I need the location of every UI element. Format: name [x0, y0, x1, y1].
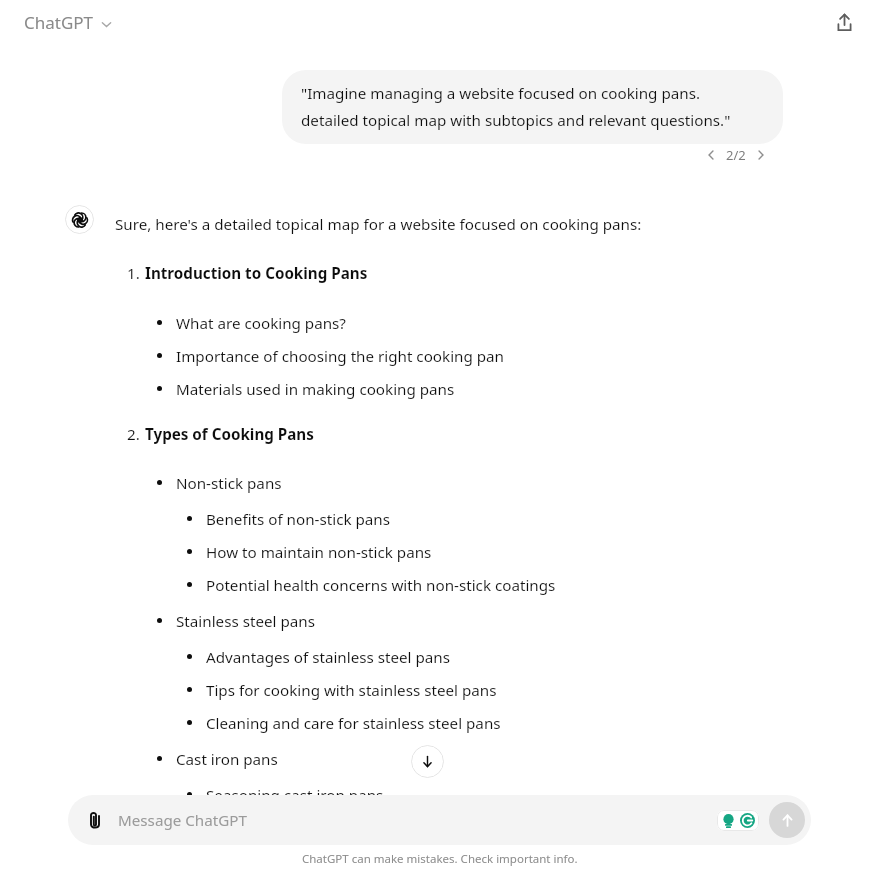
staticText: Potential health concerns with non-stick… — [206, 575, 556, 596]
button[interactable]: Non-stick pans — [0, 473, 879, 494]
button[interactable]: Seasoning cast iron pans — [0, 785, 879, 806]
staticText: Importance of choosing the right cooking… — [176, 346, 504, 367]
staticText: Cleaning and care for stainless steel pa… — [206, 713, 501, 734]
staticText: Stainless steel pans — [176, 611, 315, 632]
staticText: Types of Cooking Pans — [145, 424, 314, 445]
staticText: What are cooking pans? — [176, 313, 346, 334]
staticText: Non-stick pans — [176, 473, 282, 494]
button[interactable]: Cleaning and care for stainless steel pa… — [0, 713, 879, 734]
staticText: Tips for cooking with stainless steel pa… — [206, 680, 497, 701]
staticText: Advantages of stainless steel pans — [206, 647, 451, 668]
staticText: Seasoning cast iron pans — [206, 785, 384, 806]
button[interactable]: Potential health concerns with non-stick… — [0, 575, 879, 596]
staticText: ChatGPT can make mistakes. Check importa… — [302, 851, 578, 867]
button[interactable]: Attach file — [80, 805, 110, 835]
button[interactable]: Importance of choosing the right cooking… — [0, 346, 879, 367]
button[interactable]: Benefits of non-stick pans — [0, 509, 879, 530]
button[interactable]: 2. — [0, 424, 879, 445]
staticText: Benefits of non-stick pans — [206, 509, 390, 530]
staticText: How to maintain non-stick pans — [206, 542, 432, 563]
button[interactable]: ChatGPT — [22, 7, 115, 38]
staticText: detailed topical map with subtopics and … — [301, 110, 731, 131]
staticText: 2/2 — [726, 146, 746, 164]
button[interactable]: Stainless steel pans — [0, 611, 879, 632]
button[interactable]: 1. — [0, 263, 879, 284]
button[interactable]: Share — [828, 6, 861, 39]
button[interactable]: Advantages of stainless steel pans — [0, 647, 879, 668]
staticText: Sure, here's a detailed topical map for … — [115, 214, 642, 235]
button[interactable]: Previous response — [700, 144, 722, 166]
button[interactable]: Attach file — [68, 795, 811, 845]
button[interactable]: Tips for cooking with stainless steel pa… — [0, 680, 879, 701]
staticText: Introduction to Cooking Pans — [145, 263, 368, 284]
button[interactable]: Grammarly — [717, 810, 759, 831]
button[interactable]: What are cooking pans? — [0, 313, 879, 334]
staticText: 2. — [127, 424, 140, 445]
staticText: Message ChatGPT — [118, 810, 247, 831]
staticText: "Imagine managing a website focused on c… — [301, 83, 764, 104]
staticText: Materials used in making cooking pans — [176, 379, 455, 400]
button[interactable]: ChatGPT — [65, 205, 94, 234]
staticText: ChatGPT — [24, 11, 94, 34]
button[interactable]: "Imagine managing a website focused on c… — [282, 70, 783, 144]
button[interactable]: Cast iron pans — [0, 749, 879, 770]
staticText: 1. — [127, 263, 140, 284]
button[interactable]: How to maintain non-stick pans — [0, 542, 879, 563]
staticText: Cast iron pans — [176, 749, 278, 770]
button[interactable]: Materials used in making cooking pans — [0, 379, 879, 400]
button[interactable]: Scroll to bottom — [411, 745, 444, 778]
button[interactable]: Next response — [750, 144, 772, 166]
button[interactable]: Send message — [769, 802, 805, 838]
